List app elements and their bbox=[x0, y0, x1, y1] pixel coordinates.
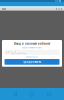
staticText: ◁ bbox=[13, 91, 17, 97]
staticText: Введите e-mail или телефон bbox=[22, 47, 42, 48]
staticText: Забыли пароль? bbox=[25, 56, 38, 58]
staticText: Вход в личный кабинет bbox=[14, 42, 50, 45]
button[interactable]: Продолжить bbox=[4, 59, 59, 65]
button[interactable]: Recent apps bbox=[47, 92, 51, 96]
staticText: ○ bbox=[29, 91, 34, 97]
staticText: □ bbox=[47, 92, 51, 96]
staticText: +7 (___) ___-__-__ bbox=[6, 50, 26, 54]
button[interactable]: Back bbox=[13, 91, 17, 97]
staticText: Продолжить bbox=[22, 60, 41, 64]
button[interactable]: Home bbox=[29, 91, 34, 97]
